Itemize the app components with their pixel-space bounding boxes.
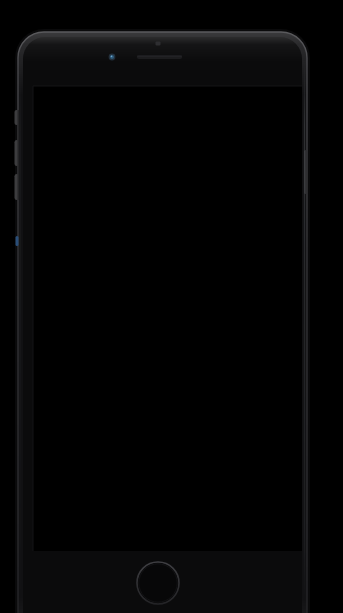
button[interactable]: iPhone device mockup, screen off bbox=[0, 0, 343, 613]
